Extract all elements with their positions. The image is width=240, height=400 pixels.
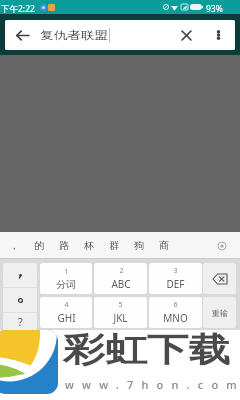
- button[interactable]: Back: [5, 20, 39, 50]
- button[interactable]: 狗: [126, 232, 151, 259]
- staticText: 下午2:22: [1, 3, 35, 15]
- staticText: JKL: [113, 311, 128, 325]
- staticText: GHI: [57, 311, 76, 325]
- button[interactable]: Keyboard settings: [215, 239, 229, 253]
- button[interactable]: Question mark: [3, 313, 37, 330]
- staticText: ?: [18, 314, 23, 329]
- staticText: 3: [173, 266, 178, 276]
- button[interactable]: Period: [3, 288, 37, 312]
- button[interactable]: 1: [40, 263, 92, 294]
- staticText: 的: [34, 239, 44, 252]
- button[interactable]: Backspace: [203, 263, 236, 294]
- staticText: 狗: [134, 239, 144, 252]
- staticText: 5: [118, 300, 123, 310]
- staticText: 彩虹下载: [63, 329, 231, 371]
- staticText: 4: [64, 300, 69, 310]
- button[interactable]: 6: [149, 297, 202, 328]
- staticText: 商: [159, 239, 169, 252]
- staticText: 复仇者联盟: [40, 28, 108, 42]
- button[interactable]: 5: [94, 297, 147, 328]
- staticText: 2: [119, 266, 124, 276]
- button[interactable]: Comma: [3, 263, 37, 287]
- staticText: ABC: [111, 277, 131, 291]
- button[interactable]: 2: [94, 263, 147, 294]
- button[interactable]: 3: [149, 263, 202, 294]
- staticText: 93%: [206, 3, 223, 15]
- staticText: 杯: [84, 239, 94, 252]
- button[interactable]: 群: [101, 232, 126, 259]
- button[interactable]: Clear text: [173, 20, 200, 50]
- button[interactable]: 杯: [76, 232, 101, 259]
- staticText: 重输: [212, 308, 228, 318]
- button[interactable]: ，: [1, 232, 26, 259]
- staticText: 1: [64, 267, 69, 277]
- staticText: 群: [109, 239, 119, 252]
- staticText: 路: [59, 239, 69, 252]
- staticText: 6: [173, 300, 178, 310]
- button[interactable]: More options: [205, 20, 232, 50]
- staticText: ，: [9, 239, 19, 252]
- staticText: 分词: [56, 278, 76, 291]
- staticText: www.7hon.com: [65, 377, 240, 392]
- button[interactable]: 4: [40, 297, 92, 328]
- button[interactable]: 商: [151, 232, 176, 259]
- button[interactable]: 的: [26, 232, 51, 259]
- button[interactable]: 路: [51, 232, 76, 259]
- staticText: DEF: [166, 277, 185, 291]
- button[interactable]: 重输: [203, 297, 236, 328]
- staticText: MNO: [163, 311, 188, 325]
